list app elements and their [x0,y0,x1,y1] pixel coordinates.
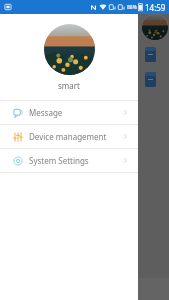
other: System Settings [13,156,23,166]
other: Message [13,108,23,118]
button[interactable]: Message [0,101,138,124]
button[interactable]: Device management [0,125,138,148]
staticText: 14:59 [145,2,166,13]
staticText: Message [29,107,63,118]
staticText: smart [58,80,80,91]
button[interactable]: smart [0,14,138,100]
staticText: Device management [29,131,107,142]
other: Device management [13,132,23,142]
button[interactable]: System Settings [0,149,138,172]
staticText: 88% [127,4,137,11]
staticText: System Settings [29,155,89,166]
